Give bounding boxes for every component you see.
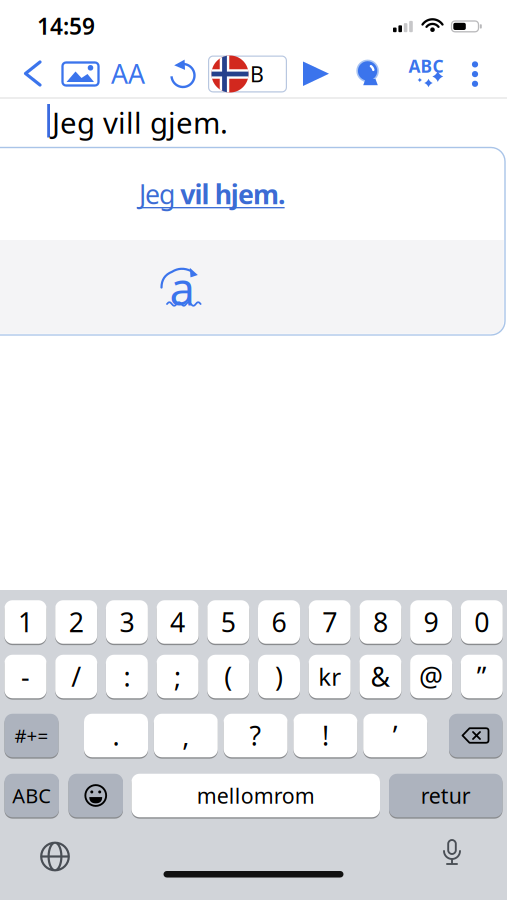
staticText: ABC [408, 54, 443, 77]
button[interactable]: @ [410, 654, 452, 699]
button[interactable]: Next keyboard [40, 841, 70, 871]
button[interactable]: kr [309, 654, 351, 699]
staticText: - [21, 659, 30, 694]
button[interactable]: Emoji [68, 773, 123, 818]
button[interactable]: 9 [410, 599, 452, 644]
staticText: mellomrom [197, 781, 315, 810]
button[interactable]: More [468, 58, 482, 90]
button[interactable]: Spell check [408, 55, 446, 91]
staticText: : [123, 659, 130, 694]
staticText: ’ [393, 718, 398, 753]
button[interactable]: / [55, 654, 97, 699]
button[interactable]: 7 [309, 599, 351, 644]
staticText: 5 [221, 604, 236, 640]
staticText: AA [111, 56, 145, 91]
button[interactable]: 0 [461, 599, 503, 644]
staticText: & [370, 659, 390, 694]
button[interactable]: . [84, 713, 148, 758]
button[interactable]: Language [208, 55, 287, 92]
button[interactable]: ( [207, 654, 249, 699]
staticText: #+= [14, 723, 48, 748]
staticText: B [250, 60, 264, 88]
staticText: 2 [69, 604, 84, 640]
button[interactable]: Rewrite [0, 241, 504, 333]
button[interactable]: Text format [109, 58, 147, 88]
staticText: ( [224, 659, 232, 694]
staticText: 0 [474, 604, 489, 640]
button[interactable]: Delete [449, 713, 502, 758]
staticText: ; [174, 659, 181, 694]
button[interactable]: #+= [4, 713, 58, 758]
staticText: kr [318, 661, 341, 692]
staticText: 14:59 [37, 11, 95, 41]
staticText: ? [250, 718, 262, 753]
button[interactable]: ; [157, 654, 199, 699]
staticText: Jeg vil hjem. [139, 176, 285, 212]
button[interactable]: Back [24, 60, 42, 87]
staticText: 7 [322, 604, 337, 640]
staticText: 6 [271, 604, 286, 640]
button[interactable]: Play [303, 61, 329, 86]
button[interactable]: mellomrom [131, 773, 380, 818]
button[interactable]: ! [293, 713, 357, 758]
button[interactable]: Undo [167, 54, 199, 90]
button[interactable]: Magic [356, 59, 380, 86]
staticText: ” [477, 659, 487, 694]
button[interactable]: ) [258, 654, 300, 699]
staticText: @ [419, 659, 443, 694]
staticText: . [112, 718, 119, 753]
button[interactable]: ” [461, 654, 503, 699]
staticText: ) [275, 659, 283, 694]
button[interactable]: retur [389, 773, 502, 818]
staticText: a [169, 258, 194, 318]
button[interactable]: ABC [4, 773, 59, 818]
staticText: 3 [119, 604, 134, 640]
staticText: 1 [18, 604, 33, 640]
button[interactable]: : [106, 654, 148, 699]
staticText: 9 [424, 604, 439, 640]
button[interactable]: ? [224, 713, 288, 758]
button[interactable]: Jeg vil hjem. [0, 148, 504, 239]
staticText: ABC [12, 782, 51, 809]
button[interactable]: , [154, 713, 218, 758]
button[interactable]: & [359, 654, 401, 699]
button[interactable]: 5 [207, 599, 249, 644]
button[interactable]: - [4, 654, 46, 699]
staticText: , [182, 718, 189, 753]
staticText: retur [421, 781, 471, 810]
button[interactable]: 4 [157, 599, 199, 644]
staticText: / [71, 659, 81, 694]
button[interactable]: ’ [363, 713, 427, 758]
staticText: 4 [170, 604, 185, 640]
staticText: Jeg vill gjem. [52, 103, 228, 142]
staticText: 8 [373, 604, 388, 640]
staticText: ! [322, 718, 329, 753]
button[interactable]: 3 [106, 599, 148, 644]
button[interactable]: Insert image [60, 60, 100, 87]
button[interactable]: 1 [4, 599, 46, 644]
button[interactable]: 6 [258, 599, 300, 644]
button[interactable]: 8 [359, 599, 401, 644]
button[interactable]: Dictate [439, 838, 465, 867]
button[interactable]: 2 [55, 599, 97, 644]
